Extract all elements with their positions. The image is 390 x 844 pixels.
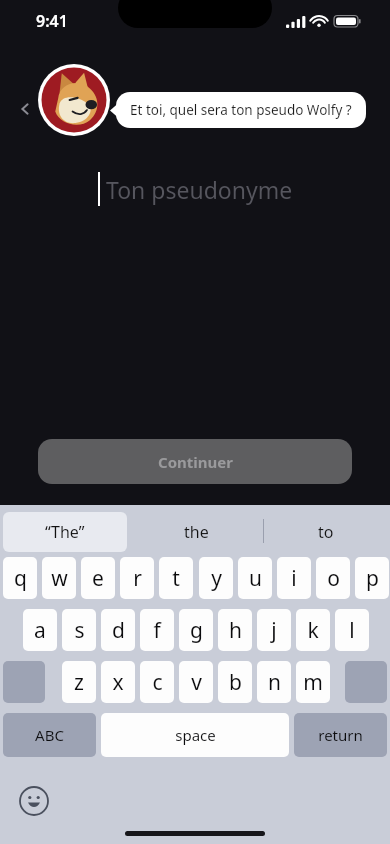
staticText: w — [51, 564, 68, 593]
staticText: y — [211, 564, 222, 593]
staticText: a — [34, 616, 46, 645]
staticText: t — [172, 564, 180, 593]
staticText: return — [318, 725, 363, 745]
staticText: ABC — [35, 725, 64, 745]
button[interactable]: j — [257, 609, 291, 651]
staticText: h — [229, 616, 242, 645]
button[interactable]: x — [101, 661, 135, 703]
staticText: 9:41 — [36, 10, 68, 32]
button[interactable]: d — [101, 609, 135, 651]
staticText: s — [74, 616, 85, 645]
staticText: space — [175, 725, 216, 745]
button[interactable]: n — [257, 661, 291, 703]
button[interactable]: q — [3, 557, 37, 599]
button[interactable]: g — [179, 609, 213, 651]
button[interactable]: f — [140, 609, 174, 651]
staticText: p — [366, 564, 379, 593]
button[interactable]: h — [218, 609, 252, 651]
staticText: “The” — [45, 521, 85, 543]
button[interactable]: Back — [12, 96, 38, 122]
button[interactable]: r — [120, 557, 154, 599]
staticText: q — [14, 564, 27, 593]
button[interactable]: w — [42, 557, 76, 599]
button[interactable]: i — [277, 557, 311, 599]
button[interactable]: y — [199, 557, 233, 599]
staticText: j — [271, 616, 277, 645]
button[interactable]: p — [355, 557, 389, 599]
button[interactable]: b — [218, 661, 252, 703]
button[interactable]: e — [81, 557, 115, 599]
button[interactable]: v — [179, 661, 213, 703]
button[interactable]: Shift — [3, 661, 45, 703]
button[interactable]: Et toi, quel sera ton pseudo Wolfy ? — [116, 92, 366, 128]
staticText: d — [112, 616, 125, 645]
staticText: b — [229, 668, 242, 697]
staticText: c — [152, 668, 163, 697]
staticText: g — [190, 616, 203, 645]
staticText: n — [268, 668, 281, 697]
button[interactable]: a — [23, 609, 57, 651]
button[interactable]: Emoji — [18, 785, 50, 817]
button[interactable]: s — [62, 609, 96, 651]
staticText: e — [92, 564, 104, 593]
button[interactable]: the — [134, 512, 258, 552]
button[interactable]: space — [101, 713, 289, 757]
button[interactable]: ABC — [3, 713, 96, 757]
staticText: Ton pseudonyme — [106, 174, 293, 205]
button[interactable]: c — [140, 661, 174, 703]
button[interactable]: Continuer — [38, 439, 352, 484]
staticText: l — [349, 616, 355, 645]
button[interactable]: l — [335, 609, 369, 651]
staticText: r — [133, 564, 142, 593]
staticText: Continuer — [158, 452, 233, 472]
staticText: Et toi, quel sera ton pseudo Wolfy ? — [130, 101, 352, 119]
staticText: u — [249, 564, 262, 593]
button[interactable]: Ton pseudonyme — [0, 165, 390, 213]
staticText: o — [327, 564, 340, 593]
button[interactable]: u — [238, 557, 272, 599]
staticText: m — [303, 668, 323, 697]
button[interactable]: return — [294, 713, 387, 757]
button[interactable]: k — [296, 609, 330, 651]
button[interactable]: to — [264, 512, 388, 552]
button[interactable]: o — [316, 557, 350, 599]
staticText: i — [291, 564, 297, 593]
button[interactable]: z — [62, 661, 96, 703]
button[interactable]: “The” — [3, 512, 127, 552]
button[interactable]: m — [296, 661, 330, 703]
staticText: x — [112, 668, 124, 697]
staticText: k — [307, 616, 319, 645]
staticText: f — [153, 616, 161, 645]
button[interactable]: Delete — [345, 661, 387, 703]
button[interactable]: t — [159, 557, 193, 599]
staticText: z — [74, 668, 84, 697]
staticText: v — [191, 668, 202, 697]
staticText: the — [184, 521, 209, 543]
staticText: to — [318, 521, 334, 543]
